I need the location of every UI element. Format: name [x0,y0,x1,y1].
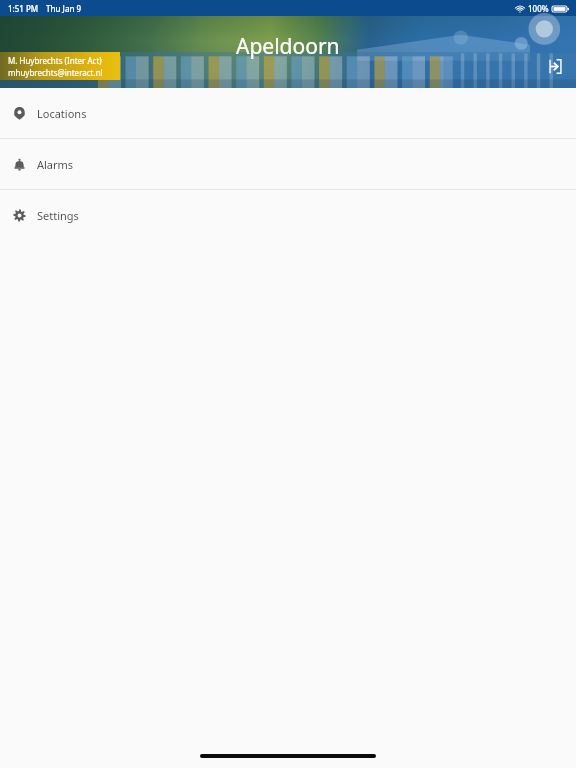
button[interactable]: Log out [538,49,572,83]
button[interactable]: Locations [0,88,576,138]
staticText: Apeldoorn [236,32,340,61]
staticText: 100% [528,3,549,14]
staticText: Alarms [37,157,74,172]
button[interactable]: Settings [0,190,576,240]
staticText: Settings [37,208,79,223]
staticText: Thu Jan 9 [46,3,82,14]
staticText: Locations [37,106,87,121]
staticText: M. Huybrechts (Inter Act) [8,55,102,66]
staticText: 1:51 PM [8,3,39,14]
staticText: mhuybrechts@interact.nl [8,67,103,78]
button[interactable]: M. Huybrechts (Inter Act) [0,52,120,80]
button[interactable]: Alarms [0,139,576,189]
